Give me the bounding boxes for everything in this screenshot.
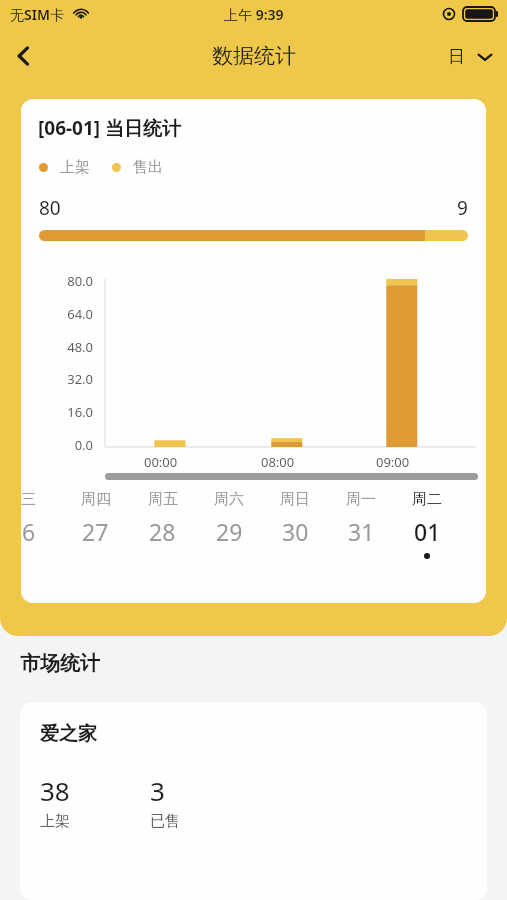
- staticText: 08:00: [261, 453, 295, 471]
- staticText: 28: [149, 516, 176, 547]
- staticText: 售出: [133, 158, 163, 177]
- staticText: 上架: [40, 812, 70, 831]
- staticText: 30: [282, 516, 309, 547]
- button[interactable]: 三: [21, 490, 62, 553]
- staticText: 市场统计: [20, 651, 100, 676]
- staticText: 无SIM卡: [10, 5, 64, 24]
- button[interactable]: [06-01] 当日统计: [21, 99, 486, 603]
- staticText: 数据统计: [212, 43, 296, 69]
- button[interactable]: 日: [444, 40, 497, 73]
- button[interactable]: 周一: [328, 490, 394, 553]
- button[interactable]: 周六: [196, 490, 262, 553]
- staticText: 日: [448, 46, 465, 67]
- staticText: 16.0: [27, 403, 93, 421]
- staticText: 38: [40, 773, 70, 808]
- staticText: 64.0: [27, 305, 93, 323]
- staticText: 爱之家: [40, 722, 97, 746]
- staticText: 上午 9:39: [224, 5, 284, 24]
- staticText: 01: [414, 516, 441, 547]
- staticText: 27: [82, 516, 109, 547]
- staticText: 已售: [150, 812, 180, 831]
- staticText: [06-01] 当日统计: [38, 115, 182, 141]
- staticText: 29: [216, 516, 243, 547]
- staticText: 周一: [346, 490, 376, 509]
- button[interactable]: 周五: [129, 490, 196, 553]
- staticText: 31: [348, 516, 375, 547]
- staticText: 32.0: [27, 370, 93, 388]
- button[interactable]: 周日: [262, 490, 328, 553]
- staticText: 80: [39, 195, 61, 221]
- staticText: 48.0: [27, 338, 93, 356]
- staticText: 0.0: [27, 436, 93, 454]
- staticText: 3: [150, 773, 165, 808]
- button[interactable]: 周二: [394, 490, 460, 559]
- staticText: 周日: [280, 490, 310, 509]
- staticText: 周六: [214, 490, 244, 509]
- button[interactable]: 爱之家: [20, 702, 487, 900]
- staticText: 09:00: [376, 453, 410, 471]
- button[interactable]: 周四: [62, 490, 129, 553]
- staticText: 上架: [60, 158, 90, 177]
- staticText: 00:00: [144, 453, 178, 471]
- staticText: 三: [21, 490, 36, 509]
- button[interactable]: Back: [0, 32, 48, 80]
- staticText: 周五: [148, 490, 178, 509]
- staticText: 9: [457, 195, 468, 221]
- staticText: 周四: [81, 490, 111, 509]
- staticText: 6: [22, 516, 36, 547]
- staticText: 80.0: [27, 272, 93, 290]
- staticText: 周二: [412, 490, 442, 509]
